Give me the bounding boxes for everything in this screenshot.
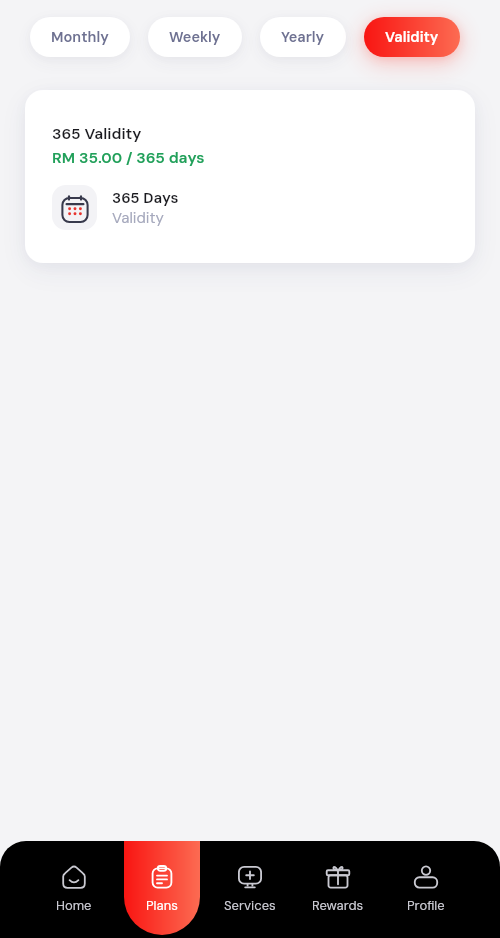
staticText: Profile <box>407 897 445 914</box>
other: Services <box>238 865 262 889</box>
button[interactable]: Plans <box>118 841 206 938</box>
button[interactable]: Home <box>30 841 118 938</box>
button[interactable]: Validity <box>364 17 460 57</box>
staticText: Weekly <box>169 28 221 47</box>
staticText: Validity <box>385 28 439 47</box>
other: Rewards <box>326 865 350 889</box>
staticText: 365 Validity <box>52 124 142 144</box>
button[interactable]: Yearly <box>260 17 346 57</box>
staticText: Validity <box>112 208 164 228</box>
staticText: Rewards <box>312 897 364 914</box>
other: Home <box>62 865 86 889</box>
button[interactable]: Rewards <box>294 841 382 938</box>
staticText: Plans <box>146 897 178 914</box>
other: Plans <box>150 865 174 889</box>
staticText: 365 Days <box>112 188 179 208</box>
staticText: Home <box>56 897 92 914</box>
button[interactable]: Weekly <box>148 17 242 57</box>
button[interactable]: Profile <box>382 841 470 938</box>
button[interactable]: Services <box>206 841 294 938</box>
staticText: Yearly <box>281 28 325 47</box>
staticText: RM 35.00 / 365 days <box>52 148 205 168</box>
button[interactable]: Monthly <box>30 17 130 57</box>
other: Profile <box>414 865 438 889</box>
staticText: Services <box>224 897 276 914</box>
staticText: Monthly <box>51 28 109 47</box>
button[interactable]: 365 Validity <box>25 90 475 263</box>
